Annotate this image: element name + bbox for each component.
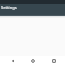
staticText: Settings xyxy=(1,5,17,10)
button[interactable]: Home xyxy=(24,56,41,65)
button[interactable]: Back xyxy=(4,56,21,65)
button[interactable]: Recent apps xyxy=(45,56,62,65)
